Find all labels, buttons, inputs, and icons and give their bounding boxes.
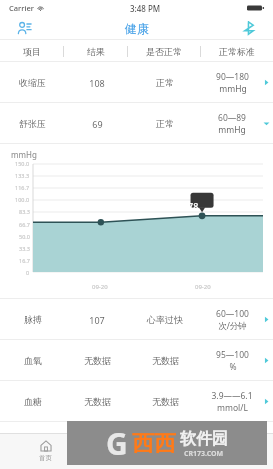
- staticText: 是否正常: [146, 46, 182, 57]
- staticText: 软件园: [180, 429, 228, 449]
- staticText: 无数据: [84, 355, 111, 366]
- staticText: 无数据: [84, 396, 111, 407]
- staticText: 正常: [156, 77, 174, 88]
- staticText: 60—89: [218, 112, 246, 124]
- staticText: mmHg: [219, 83, 247, 95]
- button[interactable]: Profile: [0, 16, 48, 40]
- staticText: 心率过快: [147, 314, 183, 325]
- button[interactable]: 首页: [0, 433, 91, 469]
- staticText: 舒张压: [19, 118, 46, 129]
- staticText: CR173.COM: [184, 449, 224, 459]
- staticText: mmol/L: [217, 402, 248, 414]
- button[interactable]: Tab: [182, 433, 273, 469]
- staticText: 血糖: [24, 396, 42, 407]
- staticText: 正常标准: [219, 46, 255, 57]
- staticText: 无数据: [152, 396, 179, 407]
- staticText: 100.0: [15, 196, 30, 203]
- staticText: G: [106, 423, 128, 464]
- staticText: 116.7: [15, 184, 30, 191]
- staticText: 150.0: [15, 160, 30, 167]
- staticText: 次/分钟: [218, 320, 247, 332]
- staticText: 脉搏: [24, 314, 42, 325]
- staticText: 83.3: [19, 208, 30, 215]
- staticText: 50.0: [19, 233, 30, 240]
- button[interactable]: 舒张压: [0, 103, 273, 144]
- staticText: 西西: [132, 430, 176, 458]
- staticText: 133.3: [15, 172, 30, 179]
- button[interactable]: 血糖: [0, 381, 273, 422]
- button[interactable]: 脉搏: [0, 299, 273, 340]
- staticText: 0: [26, 269, 30, 276]
- button[interactable]: Tab: [91, 433, 182, 469]
- staticText: 3:48 PM: [130, 3, 161, 14]
- staticText: %: [229, 361, 237, 373]
- staticText: mmHg: [11, 149, 37, 160]
- staticText: 90—180: [216, 71, 249, 83]
- staticText: 108: [89, 77, 105, 89]
- staticText: 78: [188, 200, 199, 212]
- staticText: 107: [89, 314, 105, 326]
- staticText: 69: [92, 118, 103, 130]
- staticText: 09-20: [92, 283, 108, 291]
- staticText: 09-20: [195, 283, 211, 291]
- staticText: mmHg: [218, 124, 246, 136]
- staticText: 收缩压: [19, 77, 46, 88]
- staticText: 正常: [156, 118, 174, 129]
- staticText: Carrier: [9, 3, 34, 13]
- staticText: 结果: [87, 46, 105, 57]
- button[interactable]: Bluetooth: [225, 16, 273, 40]
- staticText: 60—100: [216, 308, 249, 320]
- staticText: 33.3: [19, 245, 30, 252]
- staticText: 健康: [125, 21, 149, 36]
- staticText: 项目: [23, 46, 41, 57]
- staticText: 3.9——6.1: [211, 390, 253, 402]
- staticText: 血氧: [24, 355, 42, 366]
- staticText: 95—100: [216, 349, 249, 361]
- staticText: 无数据: [152, 355, 179, 366]
- button[interactable]: 收缩压: [0, 62, 273, 103]
- staticText: 66.7: [19, 221, 30, 228]
- staticText: 16.7: [19, 257, 30, 264]
- staticText: 首页: [39, 454, 52, 462]
- button[interactable]: 血氧: [0, 340, 273, 381]
